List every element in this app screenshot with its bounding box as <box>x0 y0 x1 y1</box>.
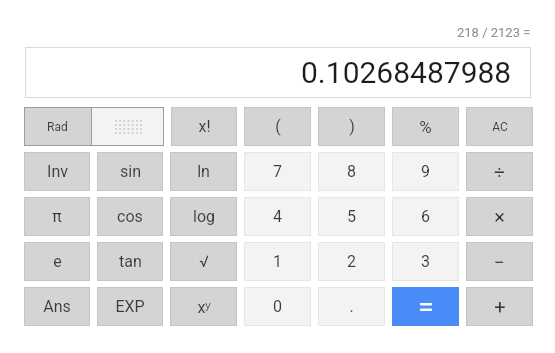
staticText: AC <box>492 120 508 134</box>
button[interactable]: 2 <box>318 242 385 281</box>
staticText: ) <box>349 117 355 136</box>
button[interactable]: ( <box>244 107 311 146</box>
staticText: 5 <box>347 207 356 226</box>
button[interactable]: √ <box>170 242 237 281</box>
staticText: 7 <box>273 162 282 181</box>
staticText: 1 <box>273 252 282 271</box>
staticText: EXP <box>115 297 145 316</box>
button[interactable]: % <box>392 107 459 146</box>
button[interactable]: 9 <box>392 152 459 191</box>
staticText: = <box>418 290 434 323</box>
button[interactable]: ) <box>318 107 385 146</box>
button[interactable]: xʸ <box>170 287 237 326</box>
staticText: % <box>419 117 432 137</box>
staticText: 6 <box>421 207 430 226</box>
button[interactable]: e <box>24 242 90 281</box>
button[interactable]: x! <box>171 107 237 146</box>
button[interactable]: Inv <box>24 152 90 191</box>
staticText: 0 <box>273 297 282 316</box>
staticText: 0.10268487988 <box>301 55 512 90</box>
button[interactable]: ln <box>170 152 237 191</box>
staticText: cos <box>117 207 143 226</box>
button[interactable]: ÷ <box>466 152 533 191</box>
button[interactable]: cos <box>97 197 163 236</box>
staticText: π <box>52 207 62 226</box>
button[interactable]: 0.10268487988 <box>25 47 531 98</box>
button[interactable]: 3 <box>392 242 459 281</box>
button[interactable]: 1 <box>244 242 311 281</box>
staticText: 218 / 2123 = <box>457 25 531 40</box>
button[interactable]: log <box>170 197 237 236</box>
staticText: 9 <box>421 162 430 181</box>
staticText: 8 <box>347 162 356 181</box>
button[interactable]: × <box>466 197 533 236</box>
staticText: . <box>349 297 354 316</box>
button[interactable]: π <box>24 197 90 236</box>
staticText: Rad <box>47 120 68 134</box>
button[interactable]: Rad <box>24 107 91 146</box>
staticText: √ <box>199 252 209 271</box>
staticText: ln <box>197 162 210 181</box>
button[interactable]: 6 <box>392 197 459 236</box>
staticText: × <box>494 205 505 228</box>
staticText: 2 <box>347 252 356 271</box>
staticText: + <box>494 295 506 318</box>
staticText: 4 <box>273 207 282 226</box>
button[interactable]: = <box>392 287 459 326</box>
staticText: ÷ <box>494 161 505 183</box>
button[interactable]: AC <box>466 107 533 146</box>
button[interactable]: 0 <box>244 287 311 326</box>
button[interactable]: 7 <box>244 152 311 191</box>
button[interactable]: Ans <box>24 287 90 326</box>
staticText: − <box>494 251 505 273</box>
button[interactable]: sin <box>97 152 163 191</box>
button[interactable]: 4 <box>244 197 311 236</box>
staticText: ( <box>275 117 281 136</box>
staticText: Ans <box>43 297 71 316</box>
button[interactable]: − <box>466 242 533 281</box>
staticText: x! <box>198 117 211 136</box>
staticText: tan <box>119 252 142 271</box>
button[interactable]: 8 <box>318 152 385 191</box>
button[interactable]: EXP <box>97 287 163 326</box>
button[interactable]: tan <box>97 242 163 281</box>
staticText: e <box>53 252 62 271</box>
button[interactable]: 5 <box>318 197 385 236</box>
button[interactable]: . <box>318 287 385 326</box>
staticText: xʸ <box>197 296 211 318</box>
staticText: 3 <box>421 252 430 271</box>
staticText: Inv <box>47 162 68 181</box>
staticText: sin <box>120 162 141 181</box>
button[interactable]: + <box>466 287 533 326</box>
staticText: log <box>193 207 215 226</box>
button[interactable]: Keypad <box>92 107 164 146</box>
